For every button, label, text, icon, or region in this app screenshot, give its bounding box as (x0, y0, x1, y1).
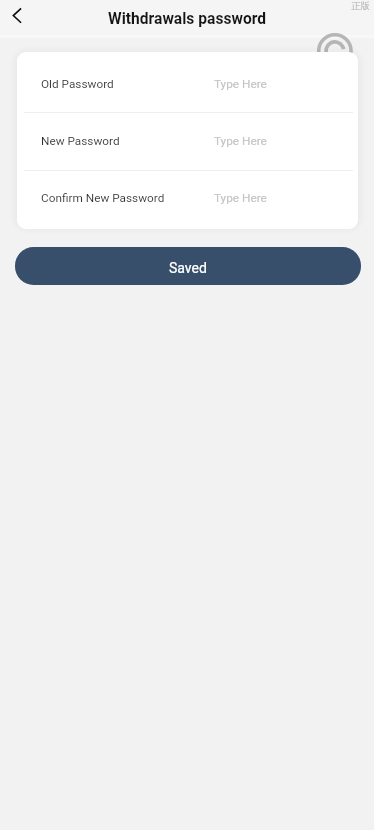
staticText: 正版 (351, 0, 370, 12)
button[interactable]: Confirm New Password (17, 171, 358, 229)
staticText: Type Here (214, 191, 267, 205)
staticText: Type Here (214, 77, 267, 91)
staticText: Type Here (214, 134, 267, 148)
button[interactable]: Old Password (17, 52, 358, 112)
staticText: Old Password (41, 77, 114, 91)
staticText: Confirm New Password (41, 191, 165, 205)
button[interactable]: New Password (17, 113, 358, 170)
button[interactable]: Saved (15, 247, 361, 285)
button[interactable]: Back (0, 0, 36, 36)
staticText: Saved (169, 260, 207, 276)
staticText: New Password (41, 134, 120, 148)
staticText: Withdrawals password (108, 10, 267, 28)
